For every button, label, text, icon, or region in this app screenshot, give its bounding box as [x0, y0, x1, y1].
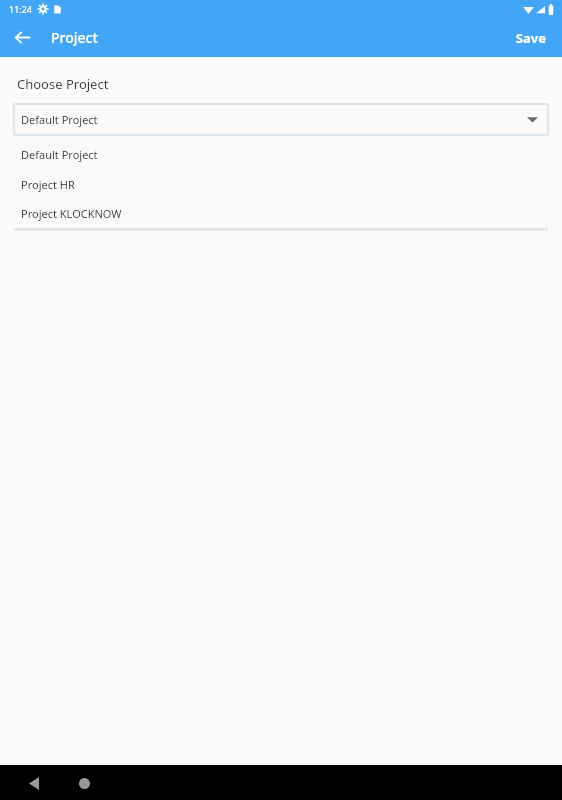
- button[interactable]: Default Project: [14, 104, 548, 135]
- button[interactable]: Back: [18, 767, 50, 799]
- staticText: Default Project: [21, 112, 98, 127]
- staticText: Save: [515, 29, 546, 47]
- staticText: Project: [51, 28, 98, 47]
- button[interactable]: Home: [68, 767, 100, 799]
- button[interactable]: Project KLOCKNOW: [14, 199, 548, 228]
- staticText: Default Project: [21, 147, 98, 162]
- staticText: 11:24: [9, 3, 33, 15]
- button[interactable]: Back: [7, 22, 38, 53]
- button[interactable]: Default Project: [14, 139, 548, 169]
- button[interactable]: Project HR: [14, 169, 548, 199]
- staticText: Choose Project: [17, 75, 109, 93]
- button[interactable]: Save: [499, 21, 562, 55]
- staticText: Project KLOCKNOW: [21, 206, 122, 221]
- staticText: Project HR: [21, 177, 75, 192]
